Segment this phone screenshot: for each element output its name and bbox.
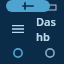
staticText: Dashboard [36, 14, 56, 44]
staticText: 9:41 [8, 2, 24, 13]
button[interactable]: Home [0, 44, 36, 64]
button[interactable]: Feed [36, 44, 64, 64]
button[interactable]: Menu [8, 19, 28, 39]
button[interactable]: Create [6, 0, 50, 12]
